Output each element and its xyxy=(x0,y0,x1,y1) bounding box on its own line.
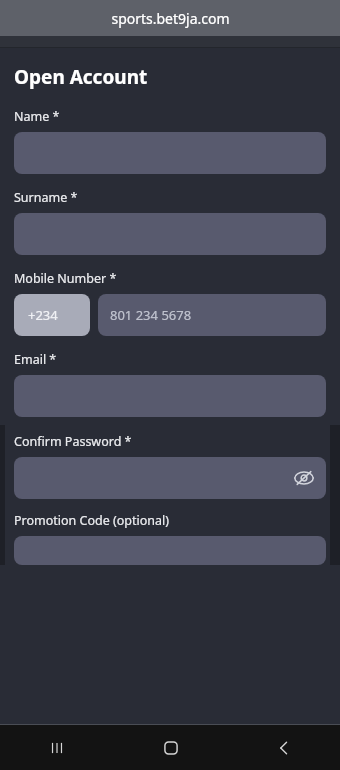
button[interactable]: +234 xyxy=(14,294,90,336)
button[interactable]: Home xyxy=(114,725,227,770)
button[interactable]: Recent apps xyxy=(0,725,114,770)
button[interactable] xyxy=(14,132,326,174)
button[interactable]: sports.bet9ja.com xyxy=(0,0,340,36)
button[interactable] xyxy=(14,375,326,417)
staticText: Surname * xyxy=(14,189,78,206)
button[interactable] xyxy=(14,213,326,255)
button[interactable] xyxy=(14,536,326,565)
staticText: Email * xyxy=(14,351,57,368)
button[interactable]: Show password xyxy=(292,466,316,490)
staticText: Promotion Code (optional) xyxy=(14,512,170,529)
button[interactable]: Open Account xyxy=(14,64,148,90)
staticText: +234 xyxy=(28,306,58,324)
button[interactable]: Back xyxy=(227,725,340,770)
staticText: 801 234 5678 xyxy=(110,306,192,324)
staticText: sports.bet9ja.com xyxy=(111,9,230,28)
staticText: Confirm Password * xyxy=(14,433,132,450)
staticText: Mobile Number * xyxy=(14,270,117,287)
button[interactable]: 801 234 5678 xyxy=(98,294,326,336)
staticText: Name * xyxy=(14,108,60,125)
button[interactable]: Show password xyxy=(14,457,326,499)
